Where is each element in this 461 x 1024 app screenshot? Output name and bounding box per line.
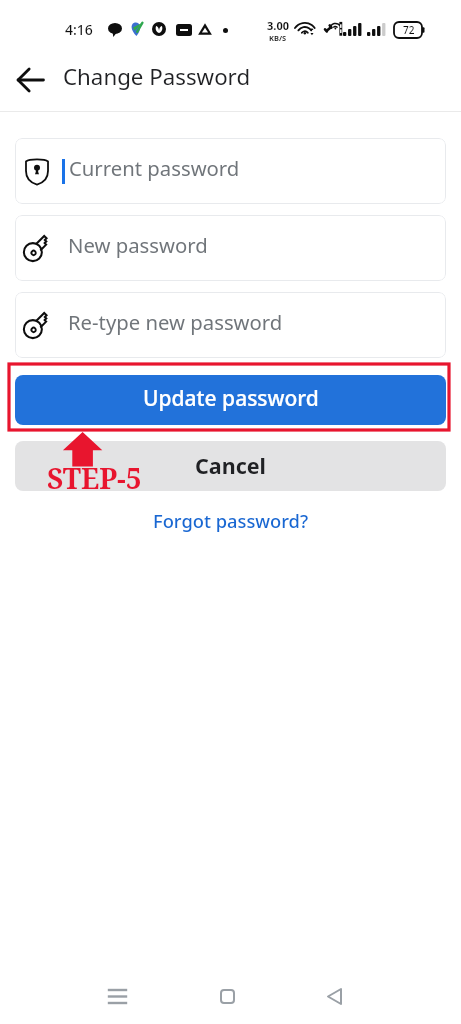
staticText: New password (68, 231, 208, 259)
button[interactable]: Back (6, 56, 54, 104)
button[interactable]: Forgot password? (153, 508, 309, 533)
staticText: Cancel (195, 451, 266, 480)
button[interactable]: Home (199, 968, 256, 1024)
button[interactable]: Cancel (15, 441, 446, 491)
staticText: Change Password (63, 61, 251, 91)
staticText: 4:16 (65, 20, 93, 39)
staticText: Current password (69, 154, 240, 182)
button[interactable]: Back (306, 968, 363, 1024)
button[interactable]: Current password (15, 138, 446, 204)
staticText: 72 (403, 23, 415, 37)
button[interactable]: Recent apps (89, 968, 146, 1024)
button[interactable]: Re-type new password (15, 292, 446, 358)
staticText: STEP-5 (47, 459, 142, 497)
button[interactable]: Update password (15, 375, 446, 425)
staticText: Update password (143, 384, 319, 413)
button[interactable]: New password (15, 215, 446, 281)
staticText: KB/S (269, 33, 287, 43)
staticText: 3.00 (267, 18, 289, 33)
staticText: Re-type new password (68, 308, 283, 336)
